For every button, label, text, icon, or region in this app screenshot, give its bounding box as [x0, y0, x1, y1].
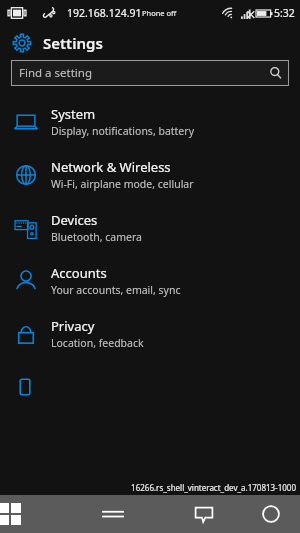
button[interactable]: Devices	[0, 201, 300, 254]
button[interactable]: Start	[0, 495, 75, 533]
button[interactable]: Privacy	[0, 307, 300, 360]
button[interactable]: System	[0, 95, 300, 148]
staticText: Settings	[43, 33, 103, 53]
button[interactable]: Find a setting	[11, 60, 289, 86]
button[interactable]: Network & Wireless	[0, 148, 300, 201]
staticText: 5:32	[274, 6, 295, 20]
staticText: 16266.rs_shell_vinteract_dev_a.170813-10…	[131, 482, 296, 493]
staticText: Find a setting	[19, 65, 92, 81]
staticText: Privacy	[51, 317, 95, 335]
staticText: Phone off	[142, 8, 177, 18]
button[interactable]: Phone settings	[0, 360, 300, 413]
staticText: 192.168.124.91	[67, 6, 142, 20]
staticText: Wi-Fi, airplane mode, cellular	[51, 177, 194, 191]
staticText: Display, notifications, battery	[51, 124, 194, 138]
staticText: Location, feedback	[51, 336, 144, 350]
staticText: Bluetooth, camera	[51, 230, 142, 244]
button[interactable]: Accounts	[0, 254, 300, 307]
button[interactable]: Action center	[150, 495, 225, 533]
button[interactable]: Search	[225, 495, 300, 533]
staticText: Your accounts, email, sync	[51, 283, 181, 297]
staticText: Accounts	[51, 264, 107, 282]
button[interactable]: Back	[75, 495, 150, 533]
staticText: System	[51, 105, 96, 123]
staticText: Network & Wireless	[51, 158, 171, 176]
staticText: Devices	[51, 211, 98, 229]
